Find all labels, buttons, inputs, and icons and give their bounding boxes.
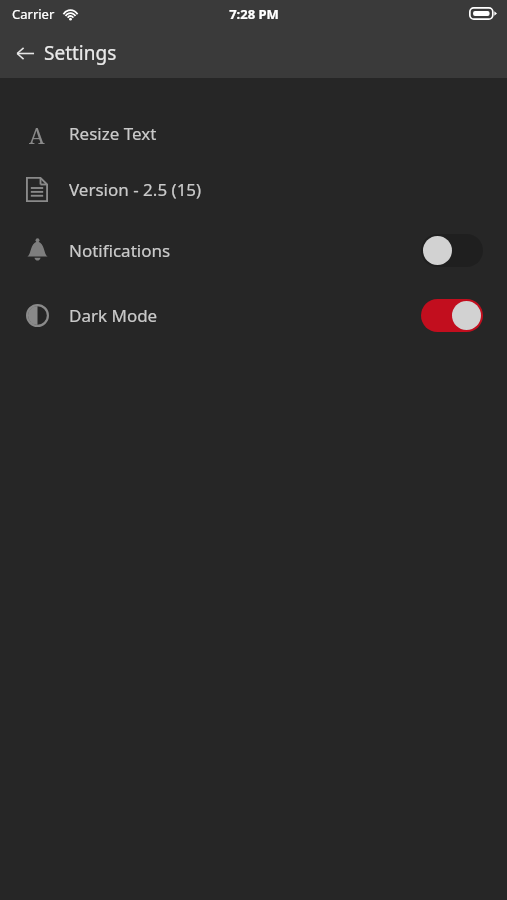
button[interactable]: Version - 2.5 (15) xyxy=(0,160,507,218)
staticText: Dark Mode xyxy=(69,304,158,327)
staticText: Carrier xyxy=(12,5,55,23)
staticText: A xyxy=(29,120,45,146)
button[interactable]: A xyxy=(0,106,507,160)
staticText: 7:28 PM xyxy=(229,5,279,23)
staticText: Settings xyxy=(44,40,117,66)
staticText: Notifications xyxy=(69,239,171,262)
button[interactable]: Notifications xyxy=(0,218,507,282)
staticText: Version - 2.5 (15) xyxy=(69,178,202,201)
button[interactable]: Toggle on xyxy=(421,299,483,332)
button[interactable]: Dark Mode xyxy=(0,282,507,348)
staticText: Resize Text xyxy=(69,122,157,145)
button[interactable]: Back xyxy=(4,32,46,74)
button[interactable]: Toggle off xyxy=(421,234,483,267)
